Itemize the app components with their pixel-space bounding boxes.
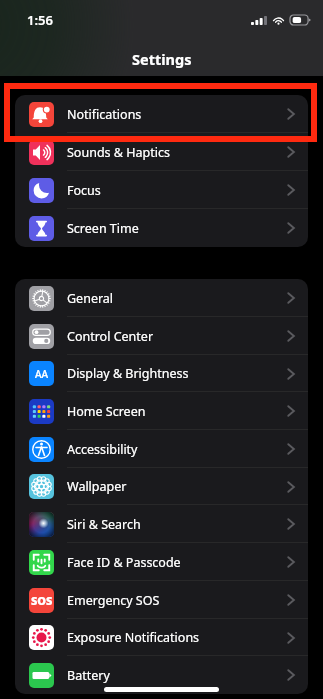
- button[interactable]: Notifications: [15, 95, 308, 133]
- button[interactable]: Control Center: [15, 317, 308, 355]
- staticText: General: [67, 290, 114, 307]
- button[interactable]: Home Screen: [15, 392, 308, 430]
- staticText: Accessibility: [67, 441, 138, 458]
- button[interactable]: Wallpaper: [15, 468, 308, 505]
- button[interactable]: AA: [15, 355, 308, 392]
- staticText: Home Screen: [67, 403, 146, 420]
- button[interactable]: Accessibility: [15, 430, 308, 468]
- button[interactable]: SOS: [15, 581, 308, 619]
- staticText: Emergency SOS: [67, 592, 160, 609]
- staticText: Notifications: [67, 106, 142, 123]
- staticText: Battery: [67, 667, 110, 684]
- button[interactable]: Exposure Notifications: [15, 619, 308, 656]
- button[interactable]: Focus: [15, 171, 308, 209]
- staticText: Sounds & Haptics: [67, 144, 170, 161]
- staticText: Screen Time: [67, 220, 139, 237]
- staticText: Display & Brightness: [67, 365, 189, 382]
- staticText: Focus: [67, 182, 101, 199]
- button[interactable]: Siri & Search: [15, 505, 308, 543]
- staticText: SOS: [31, 593, 53, 608]
- staticText: Settings: [132, 49, 192, 69]
- staticText: Wallpaper: [67, 478, 127, 495]
- staticText: Siri & Search: [67, 516, 141, 533]
- button[interactable]: Screen Time: [15, 209, 308, 247]
- staticText: 1:56: [27, 11, 53, 29]
- staticText: AA: [35, 367, 49, 381]
- staticText: Face ID & Passcode: [67, 554, 181, 571]
- staticText: Exposure Notifications: [67, 629, 200, 646]
- button[interactable]: Sounds & Haptics: [15, 133, 308, 171]
- button[interactable]: Battery: [15, 656, 308, 694]
- button[interactable]: Face ID & Passcode: [15, 543, 308, 581]
- staticText: Control Center: [67, 328, 154, 345]
- button[interactable]: General: [15, 279, 308, 317]
